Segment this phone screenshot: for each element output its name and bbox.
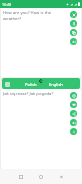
- button[interactable]: Back: [56, 172, 66, 182]
- button[interactable]: Recents: [16, 172, 26, 182]
- button[interactable]: Fullscreen: [70, 128, 77, 135]
- staticText: 16:48: [2, 2, 11, 7]
- button[interactable]: English: [46, 78, 66, 89]
- button[interactable]: Home: [36, 172, 46, 182]
- button[interactable]: Menu: [5, 82, 10, 87]
- button[interactable]: Save: [70, 92, 77, 99]
- button[interactable]: Rate translation: [70, 101, 77, 108]
- staticText: How are you? How is the weather?: [3, 10, 67, 21]
- button[interactable]: Listen: [70, 38, 77, 45]
- button[interactable]: Voice input: [70, 20, 77, 27]
- staticText: Jak się masz? Jak pogoda?: [3, 91, 54, 97]
- staticText: Polish: [25, 82, 37, 87]
- button[interactable]: Listen: [70, 119, 77, 126]
- button[interactable]: Clear: [70, 11, 77, 18]
- staticText: English: [49, 82, 63, 87]
- button[interactable]: Share: [70, 110, 77, 117]
- button[interactable]: Swap languages: [38, 78, 43, 83]
- button[interactable]: Polish: [22, 78, 40, 89]
- button[interactable]: Copy: [70, 29, 77, 36]
